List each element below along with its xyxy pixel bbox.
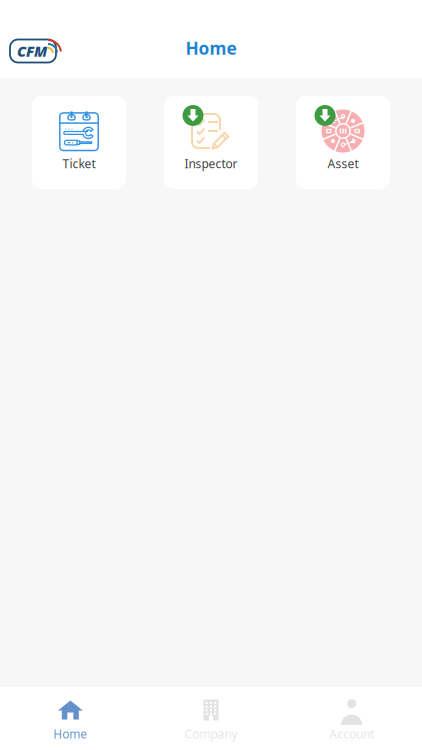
staticText: Asset [327, 155, 358, 171]
button[interactable]: Company [141, 687, 281, 750]
button[interactable]: CFM [0, 24, 64, 54]
button[interactable]: Inspector [164, 96, 258, 189]
button[interactable]: Ticket [32, 96, 126, 189]
staticText: Home [185, 36, 236, 59]
staticText: Ticket [62, 155, 95, 171]
staticText: Account [329, 726, 374, 742]
button[interactable]: Account [281, 687, 422, 750]
staticText: Inspector [184, 155, 237, 171]
button[interactable]: Asset [296, 96, 390, 189]
staticText: CFM [17, 41, 47, 61]
button[interactable]: Home [0, 687, 141, 750]
staticText: Home [53, 726, 87, 742]
staticText: Company [184, 726, 237, 742]
